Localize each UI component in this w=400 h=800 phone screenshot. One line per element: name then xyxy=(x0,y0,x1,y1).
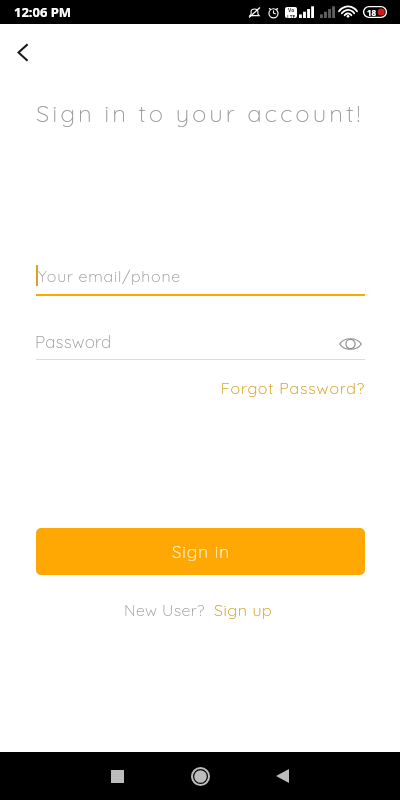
button[interactable]: Sign in xyxy=(36,528,365,575)
staticText: Forgot Password? xyxy=(220,378,365,398)
staticText: 12:06 PM xyxy=(14,3,72,21)
staticText: Password xyxy=(35,331,338,352)
staticText: New User? xyxy=(124,600,214,620)
button[interactable]: Recents xyxy=(76,752,158,800)
button[interactable]: Forgot Password? xyxy=(36,378,365,398)
staticText: Vo xyxy=(288,7,295,14)
button[interactable]: Back xyxy=(241,752,323,800)
button[interactable]: Home xyxy=(159,752,241,800)
staticText: LTE xyxy=(287,14,296,18)
staticText: 18 xyxy=(367,7,377,18)
button[interactable]: Sign up xyxy=(214,600,273,620)
staticText: Your email/phone xyxy=(38,266,181,286)
button[interactable]: Back xyxy=(2,32,42,72)
staticText: Sign in xyxy=(172,541,230,562)
staticText: Sign in to your account! xyxy=(36,98,364,128)
button[interactable]: Show password xyxy=(337,331,363,357)
